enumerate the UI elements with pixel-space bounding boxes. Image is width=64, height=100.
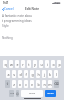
button[interactable]: w [9,60,13,68]
staticText: d [19,72,22,77]
button[interactable]: m [48,80,52,88]
staticText: c [25,82,27,87]
staticText: Edit Note [25,7,40,11]
button[interactable]: 123 [9,90,14,97]
staticText: return [47,92,54,95]
staticText: g [31,72,34,77]
button[interactable]: ⌫ [54,80,59,88]
staticText: Cancel [4,7,14,11]
staticText: v [31,82,33,87]
button[interactable]: r [21,60,25,68]
staticText: space [29,92,35,95]
button[interactable]: h [36,70,40,78]
button[interactable]: i [45,60,49,68]
staticText: p [58,62,61,67]
button[interactable]: f [24,70,28,78]
button[interactable]: d [18,70,22,78]
button[interactable]: g [30,70,34,78]
staticText: A fantastic note abou [2,14,32,18]
button[interactable]: k [48,70,52,78]
button[interactable]: Cancel [1,7,15,11]
staticText: n [43,82,46,87]
button[interactable]: n [42,80,46,88]
staticText: a [7,72,10,77]
staticText: s [13,72,15,77]
staticText: e [16,62,19,67]
staticText: h [37,72,40,77]
staticText: 123 [10,92,14,95]
staticText: o [52,62,55,67]
button[interactable]: ☺ [16,90,19,97]
staticText: j [44,72,45,77]
staticText: r [22,62,24,67]
button[interactable]: p [57,60,61,68]
staticText: y [34,62,36,67]
button[interactable]: y [33,60,37,68]
button[interactable]: return [45,90,56,97]
staticText: i [47,62,48,67]
staticText: w [10,62,13,67]
button[interactable]: j [42,70,46,78]
staticText: Nothing [2,36,13,40]
button[interactable]: q [3,60,7,68]
button[interactable]: space [21,90,43,97]
staticText: t [28,62,30,67]
button[interactable]: s [12,70,16,78]
staticText: f [25,72,27,77]
staticText: t programming ideas [2,19,32,23]
staticText: ⇧ [6,82,9,86]
staticText: m [48,82,52,87]
staticText: l [56,72,57,77]
staticText: b [37,82,40,87]
staticText: ⌫ [54,82,59,86]
staticText: Style [2,24,9,28]
button[interactable]: ⇧ [5,80,10,88]
other: Status icons [52,2,61,4]
button[interactable]: l [54,70,58,78]
button[interactable]: e [15,60,19,68]
button[interactable]: b [36,80,40,88]
button[interactable]: x [18,80,22,88]
staticText: ☺ [16,92,19,95]
button[interactable]: a [6,70,10,78]
staticText: 9:41 [3,1,9,5]
button[interactable]: c [24,80,28,88]
button[interactable]: u [39,60,43,68]
button[interactable]: v [30,80,34,88]
button[interactable]: t [27,60,31,68]
staticText: q [4,62,7,67]
staticText: z [13,82,15,87]
button[interactable]: z [12,80,16,88]
button[interactable]: o [51,60,55,68]
staticText: u [40,62,43,67]
staticText: k [49,72,51,77]
staticText: x [19,82,21,87]
